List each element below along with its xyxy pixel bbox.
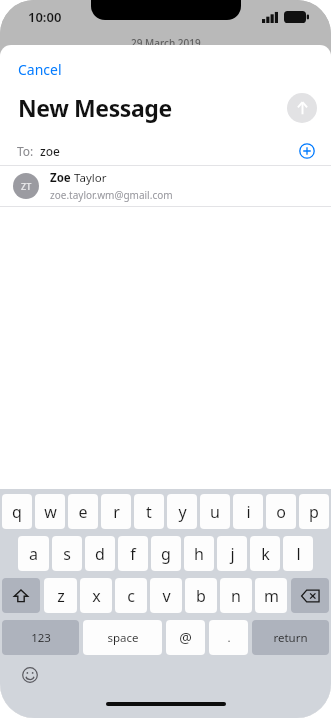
button[interactable]: n (220, 578, 252, 613)
staticText: z (57, 585, 65, 607)
button[interactable]: Send (287, 93, 317, 123)
staticText: g (161, 543, 171, 565)
button[interactable]: b (185, 578, 217, 613)
button[interactable]: 123 (2, 620, 79, 655)
staticText: New Message (18, 92, 172, 123)
button[interactable]: s (52, 536, 82, 571)
button[interactable]: u (200, 494, 230, 529)
staticText: space (107, 630, 139, 646)
staticText: zoe (40, 143, 60, 159)
staticText: . (227, 630, 231, 646)
button[interactable]: ZT (0, 166, 331, 206)
staticText: v (162, 585, 171, 607)
staticText: y (178, 501, 187, 523)
button[interactable]: Delete (291, 578, 329, 613)
button[interactable]: Emoji (18, 663, 42, 687)
staticText: a (29, 543, 38, 565)
button[interactable]: a (18, 536, 49, 571)
staticText: ZT (21, 180, 32, 192)
button[interactable]: y (167, 494, 197, 529)
button[interactable]: Shift (2, 578, 40, 613)
button[interactable]: i (233, 494, 263, 529)
staticText: Taylor (71, 170, 107, 186)
staticText: p (309, 501, 319, 523)
button[interactable]: space (83, 620, 162, 655)
button[interactable]: Cancel (16, 58, 64, 81)
staticText: @ (179, 628, 192, 647)
button[interactable]: o (266, 494, 296, 529)
staticText: u (210, 501, 220, 523)
staticText: To: (17, 143, 34, 159)
button[interactable]: q (2, 494, 32, 529)
staticText: 10:00 (28, 8, 62, 26)
button[interactable]: g (151, 536, 181, 571)
staticText: s (63, 543, 71, 565)
staticText: b (196, 585, 206, 607)
staticText: x (92, 585, 101, 607)
staticText: d (95, 543, 105, 565)
staticText: m (264, 585, 279, 607)
staticText: l (296, 543, 301, 565)
button[interactable]: x (80, 578, 112, 613)
staticText: k (261, 543, 270, 565)
staticText: 123 (31, 630, 51, 646)
button[interactable]: w (35, 494, 65, 529)
staticText: q (12, 501, 22, 523)
staticText: e (78, 501, 88, 523)
staticText: Zoe (50, 170, 71, 186)
button[interactable]: d (85, 536, 115, 571)
button[interactable]: z (44, 578, 77, 613)
button[interactable]: . (209, 620, 248, 655)
staticText: w (44, 501, 57, 523)
button[interactable]: m (255, 578, 287, 613)
staticText: c (127, 585, 135, 607)
button[interactable]: j (217, 536, 247, 571)
button[interactable]: p (299, 494, 329, 529)
staticText: j (230, 543, 235, 565)
staticText: return (273, 630, 308, 646)
button[interactable]: return (252, 620, 329, 655)
staticText: r (113, 501, 120, 523)
button[interactable]: Add contact (296, 140, 318, 162)
button[interactable]: r (101, 494, 131, 529)
button[interactable]: h (184, 536, 214, 571)
staticText: zoe.taylor.wm@gmail.com (50, 188, 173, 202)
staticText: 29 March 2019 (131, 36, 201, 50)
button[interactable]: @ (166, 620, 205, 655)
staticText: Cancel (18, 60, 62, 79)
button[interactable]: e (68, 494, 98, 529)
button[interactable]: v (150, 578, 182, 613)
staticText: n (231, 585, 241, 607)
staticText: f (130, 543, 136, 565)
staticText: h (194, 543, 204, 565)
button[interactable]: c (115, 578, 147, 613)
staticText: i (246, 501, 251, 523)
button[interactable]: l (283, 536, 313, 571)
button[interactable]: t (134, 494, 164, 529)
button[interactable]: k (250, 536, 280, 571)
button[interactable]: f (118, 536, 148, 571)
staticText: t (146, 501, 152, 523)
staticText: o (276, 501, 286, 523)
button[interactable]: To: (0, 137, 331, 165)
